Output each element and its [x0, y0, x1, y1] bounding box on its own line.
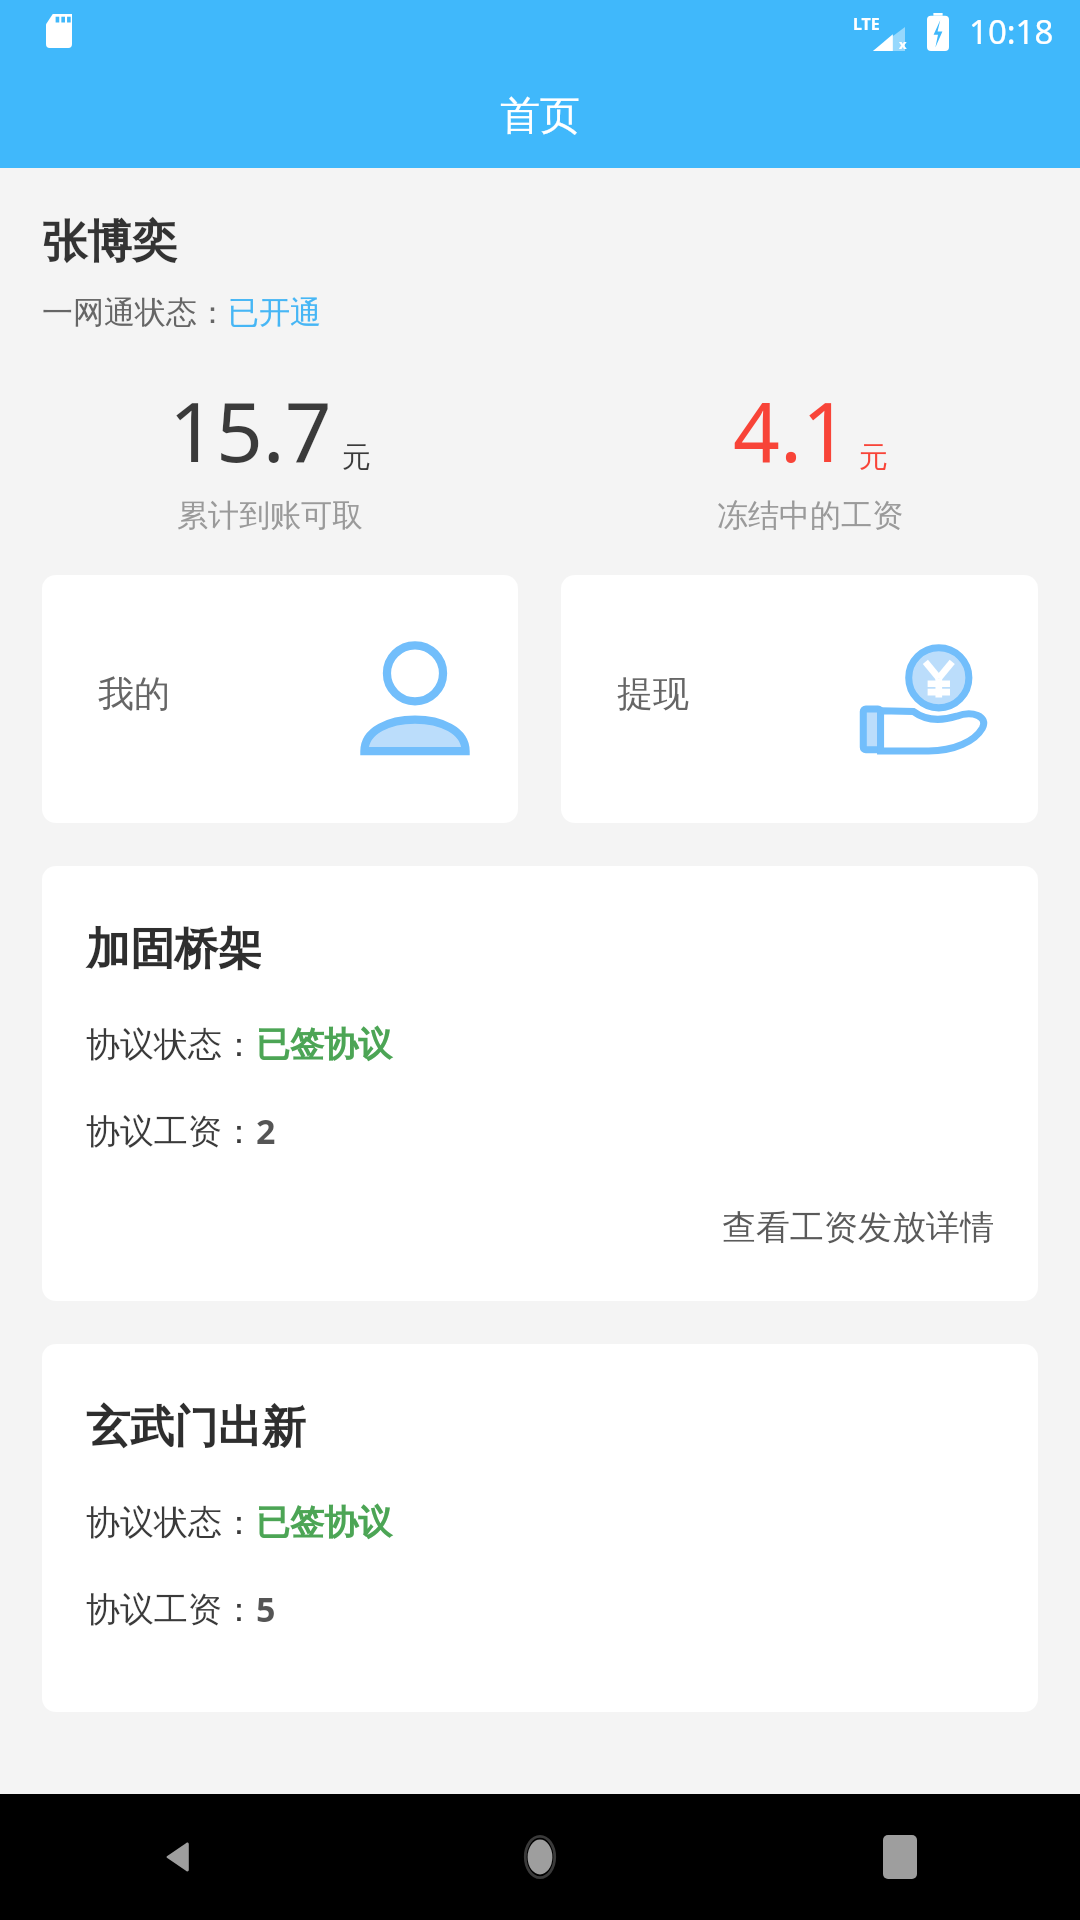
staticText: 4.1 [733, 374, 849, 486]
button[interactable]: Recents [720, 1794, 1080, 1920]
staticText: 张博奕 [42, 214, 177, 271]
staticText: 15.7 [169, 374, 332, 486]
button[interactable]: 加固桥架 [42, 866, 1038, 1301]
staticText: 已签协议 [256, 1501, 392, 1544]
button[interactable]: 提现 [561, 575, 1038, 823]
staticText: 元 [859, 439, 888, 476]
staticText: 加固桥架 [86, 922, 262, 977]
staticText: 一网通状态： [42, 293, 228, 332]
staticText: 冻结中的工资 [717, 496, 903, 535]
button[interactable]: 查看工资发放详情 [42, 1198, 1038, 1257]
staticText: LTE [853, 13, 880, 35]
button[interactable]: Home [360, 1794, 720, 1920]
staticText: 我的 [98, 671, 170, 716]
staticText: 累计到账可取 [177, 496, 363, 535]
staticText: 10:18 [969, 9, 1054, 54]
staticText: 元 [342, 439, 371, 476]
button[interactable]: Back [0, 1794, 360, 1920]
button[interactable]: 玄武门出新 [42, 1344, 1038, 1712]
staticText: 5 [256, 1586, 276, 1632]
staticText: 查看工资发放详情 [722, 1206, 994, 1249]
staticText: 已开通 [228, 293, 321, 332]
staticText: 提现 [617, 671, 689, 716]
button[interactable]: 我的 [42, 575, 518, 823]
staticText: 协议工资： [86, 1110, 256, 1153]
staticText: x [899, 35, 907, 53]
staticText: 协议工资： [86, 1588, 256, 1631]
staticText: 2 [256, 1108, 276, 1154]
staticText: 已签协议 [256, 1023, 392, 1066]
staticText: 协议状态： [86, 1023, 256, 1066]
staticText: 首页 [500, 90, 580, 140]
staticText: 协议状态： [86, 1501, 256, 1544]
staticText: 玄武门出新 [86, 1400, 306, 1455]
